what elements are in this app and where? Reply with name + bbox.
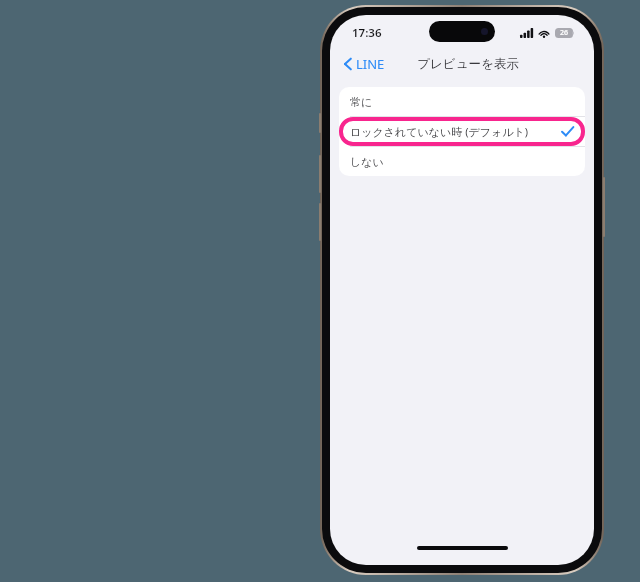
button[interactable]: 常に xyxy=(339,87,585,116)
button[interactable]: LINE xyxy=(338,52,391,76)
staticText: 26 xyxy=(560,28,569,38)
staticText: LINE xyxy=(356,55,385,73)
staticText: プレビューを表示 xyxy=(417,56,519,72)
staticText: しない xyxy=(350,155,384,169)
button[interactable]: ロックされていない時 (デフォルト) xyxy=(339,117,585,146)
staticText: ロックされていない時 (デフォルト) xyxy=(350,124,529,139)
staticText: 17:36 xyxy=(352,25,382,41)
button[interactable]: しない xyxy=(339,147,585,176)
staticText: 常に xyxy=(350,95,373,109)
